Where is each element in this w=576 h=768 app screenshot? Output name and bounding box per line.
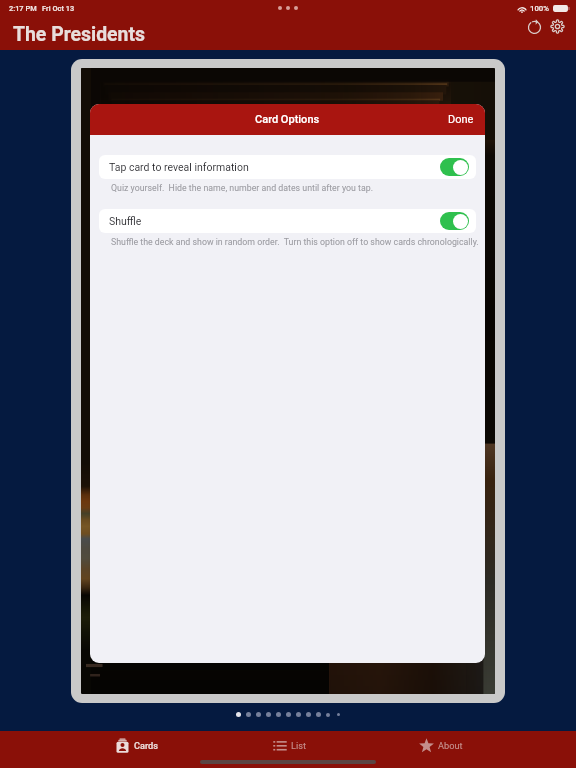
button[interactable]: Toggle Tap card to reveal information [440,158,469,176]
button[interactable]: Refresh [520,12,548,40]
staticText: Shuffle [109,215,142,227]
staticText: Shuffle the deck and show in random orde… [111,237,479,247]
button[interactable]: Done [437,104,485,135]
button[interactable]: Shuffle [99,209,476,233]
button[interactable]: Toggle Shuffle [440,212,469,230]
staticText: List [291,740,306,751]
staticText: Quiz yourself. Hide the name, number and… [111,183,373,193]
button[interactable]: Tap card to reveal information [99,155,476,179]
button[interactable]: List [251,731,327,759]
button[interactable]: About [403,731,479,759]
button[interactable]: Cards [99,731,175,759]
staticText: Tap card to reveal information [109,161,249,173]
staticText: Cards [134,740,159,751]
staticText: About [438,740,463,751]
staticText: Card Options [255,113,320,126]
staticText: 2:17 PM Fri Oct 13 [9,4,75,13]
staticText: The Presidents [13,23,145,46]
button[interactable]: Settings [543,12,571,40]
staticText: 100% [530,4,550,13]
staticText: Done [448,113,474,126]
